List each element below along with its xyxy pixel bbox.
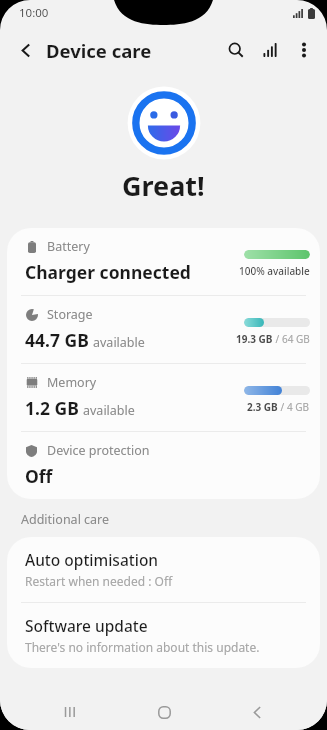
button[interactable]: Recent apps <box>47 694 93 730</box>
staticText: 44.7 GB <box>25 328 89 352</box>
staticText: There's no information about this update… <box>25 639 260 655</box>
staticText: Off <box>25 464 53 488</box>
button[interactable]: Storage <box>7 296 320 363</box>
button[interactable]: Memory <box>7 364 320 431</box>
staticText: / 4 GB <box>278 400 310 414</box>
button[interactable]: Battery <box>7 228 320 295</box>
staticText: 100% available <box>239 264 310 278</box>
staticText: Additional care <box>21 511 110 528</box>
staticText: Charger connected <box>25 260 191 284</box>
button[interactable]: Usage statistics <box>253 33 287 67</box>
staticText: Device care <box>46 38 152 63</box>
button[interactable]: Software update <box>7 603 320 668</box>
staticText: available <box>83 402 135 419</box>
staticText: Great! <box>122 167 205 204</box>
staticText: Battery <box>47 238 90 255</box>
staticText: 19.3 GB <box>236 332 273 346</box>
button[interactable]: Back <box>8 32 44 68</box>
button[interactable]: Auto optimisation <box>7 537 320 602</box>
staticText: 10:00 <box>19 5 49 21</box>
staticText: Restart when needed : Off <box>25 573 173 589</box>
button[interactable]: Search <box>219 33 253 67</box>
staticText: available <box>93 334 145 351</box>
button[interactable]: Home <box>141 694 187 730</box>
staticText: Device protection <box>47 442 150 459</box>
staticText: Software update <box>25 615 148 636</box>
button[interactable]: More options <box>287 33 321 67</box>
button[interactable]: Back <box>234 694 280 730</box>
staticText: 2.3 GB <box>247 400 278 414</box>
staticText: / 64 GB <box>273 332 310 346</box>
staticText: 1.2 GB <box>25 396 79 420</box>
staticText: Auto optimisation <box>25 549 159 570</box>
button[interactable]: Device protection <box>7 432 320 499</box>
staticText: Storage <box>47 306 93 323</box>
staticText: Memory <box>47 374 97 391</box>
